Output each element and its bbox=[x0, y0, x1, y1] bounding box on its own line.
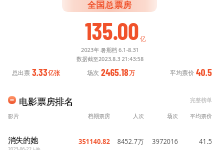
staticText: 平均票价 bbox=[170, 69, 194, 77]
staticText: 135.00 bbox=[85, 16, 139, 45]
staticText: 完整榜单 bbox=[190, 97, 212, 104]
staticText: 3972016 bbox=[144, 137, 178, 146]
button[interactable]: 电影票房排名 bbox=[8, 95, 212, 106]
staticText: 档期票房 bbox=[70, 113, 110, 120]
staticText: 万 bbox=[129, 69, 135, 77]
staticText: 2465.18 bbox=[101, 66, 129, 78]
button[interactable]: 全国总票房 bbox=[62, 0, 157, 12]
staticText: 亿张 bbox=[48, 69, 60, 77]
staticText: 2023年 暑期档 6.1-8.31 bbox=[0, 46, 220, 54]
staticText: 亿 bbox=[140, 35, 146, 43]
staticText: 8452.7万 bbox=[110, 137, 144, 146]
staticText: 数据截至2023.8.3 21:43:58 bbox=[0, 55, 220, 63]
staticText: 总出票 bbox=[12, 69, 30, 77]
staticText: 影片 bbox=[8, 113, 70, 120]
button[interactable]: 消失的她 bbox=[8, 136, 212, 150]
staticText: 3.33 bbox=[32, 66, 48, 78]
staticText: 场次 bbox=[144, 113, 178, 120]
staticText: 电影票房排名 bbox=[19, 96, 73, 107]
staticText: 全国总票房 bbox=[87, 0, 132, 11]
staticText: 351140.82 bbox=[70, 137, 110, 146]
staticText: 40.5 bbox=[196, 66, 212, 78]
staticText: 人次 bbox=[110, 113, 144, 120]
staticText: 41.5 bbox=[178, 137, 212, 146]
staticText: 平均票价 bbox=[178, 113, 212, 120]
staticText: 消失的她 bbox=[8, 136, 38, 145]
staticText: 2023-06-22上映 bbox=[8, 146, 41, 150]
staticText: 场次 bbox=[87, 69, 99, 77]
